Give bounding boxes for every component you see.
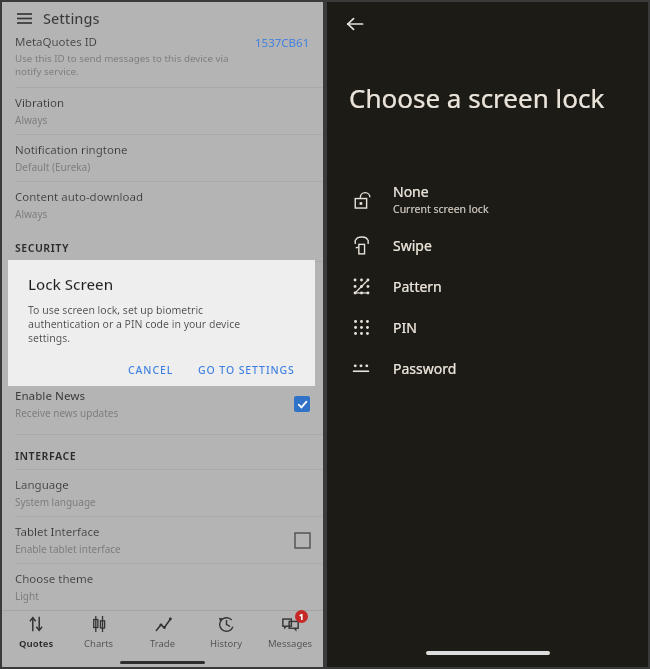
staticText: To use screen lock, set up biometric aut… [28,303,241,345]
button[interactable]: Password [327,356,648,380]
button[interactable]: OTP [2,262,323,292]
staticText: Notification ringtone [15,142,128,158]
button[interactable]: Charts [69,611,129,653]
button[interactable]: Language [2,470,323,516]
staticText: Settings [43,8,100,28]
staticText: CANCEL [128,363,174,377]
staticText: Swipe [393,236,432,255]
staticText: Tablet Interface [15,524,100,540]
button[interactable]: Pattern [327,274,648,298]
staticText: Lock Screen [28,274,114,294]
staticText: Content auto-download [15,189,143,205]
staticText: Always [15,207,48,221]
button[interactable]: Trade [133,611,193,653]
button[interactable]: Content auto-download [2,182,323,228]
staticText: Receive news updates [15,406,119,420]
button[interactable]: Notification ringtone [2,135,323,181]
button[interactable]: Back [341,10,369,38]
button[interactable]: None [327,182,648,216]
staticText: Enable tablet interface [15,542,121,556]
button[interactable]: Tablet Interface [2,517,323,563]
staticText: 1 [299,611,304,622]
staticText: Choose a screen lock [349,80,605,115]
staticText: Current screen lock [393,202,489,216]
staticText: OTP [15,269,37,285]
staticText: Language [15,477,69,493]
staticText: Choose theme [15,571,94,587]
staticText: Trade [150,637,176,650]
staticText: Enable News [15,388,86,404]
button[interactable]: PIN [327,315,648,339]
button[interactable]: History [196,611,256,653]
staticText: Pattern [393,277,442,296]
button[interactable]: Vibration [2,88,323,134]
button[interactable]: CANCEL [120,358,182,382]
button[interactable]: 1 [260,611,320,653]
staticText: INTERFACE [15,449,77,463]
staticText: Charts [84,637,114,650]
button[interactable]: MetaQuotes ID [2,34,323,78]
staticText: System language [15,495,96,509]
staticText: Use this ID to send messages to this dev… [15,52,229,78]
button[interactable]: Quotes [6,611,66,653]
staticText: None [393,182,429,201]
staticText: MetaQuotes ID [15,34,97,50]
staticText: Light [15,589,39,603]
staticText: Password [393,359,457,378]
staticText: 1537CB61 [255,35,310,51]
button[interactable]: Swipe [327,233,648,257]
button[interactable]: Open navigation menu [12,6,36,30]
staticText: PIN [393,318,417,337]
staticText: Always [15,113,48,127]
staticText: SECURITY [15,241,69,255]
button[interactable]: Enable News [2,388,323,420]
staticText: Quotes [19,637,54,650]
staticText: Default (Eureka) [15,160,91,174]
button[interactable]: GO TO SETTINGS [190,358,303,382]
staticText: GO TO SETTINGS [198,363,295,377]
button[interactable]: Choose theme [2,564,323,610]
staticText: Messages [268,637,313,650]
staticText: History [210,637,242,650]
staticText: Vibration [15,95,65,111]
